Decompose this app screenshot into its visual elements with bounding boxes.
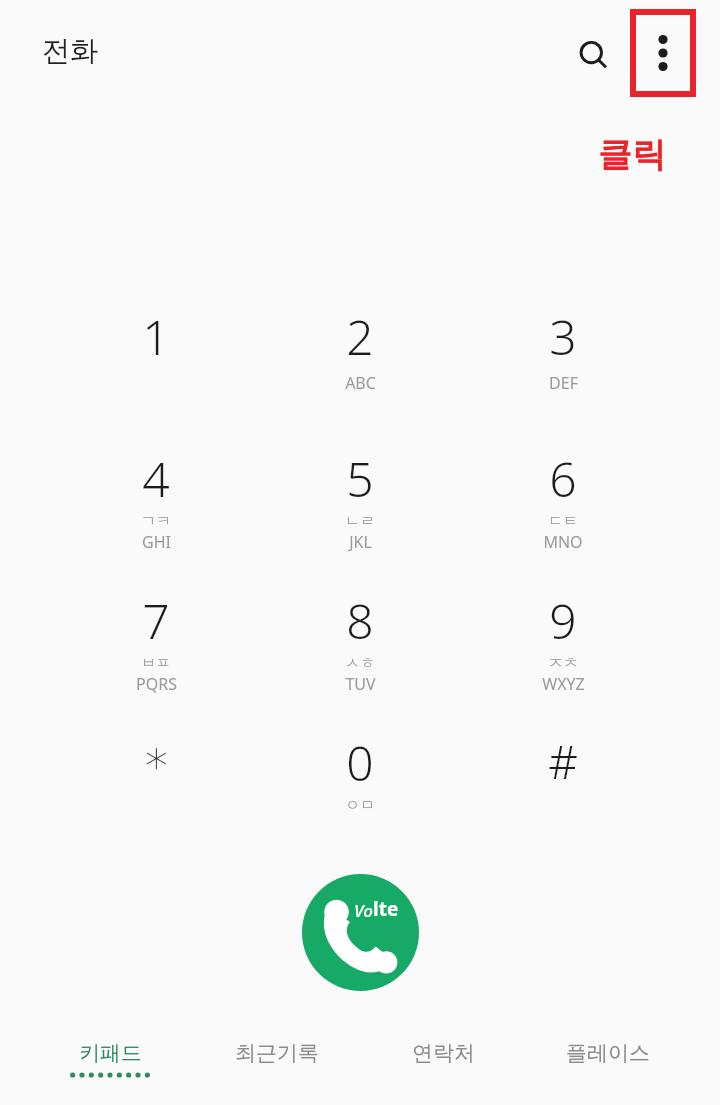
button[interactable]: 3 — [495, 304, 631, 436]
staticText: 플레이스 — [566, 1040, 650, 1066]
staticText: 8 — [346, 588, 374, 653]
button[interactable]: 플레이스 — [524, 1040, 692, 1104]
button[interactable]: 1 — [88, 304, 224, 436]
button[interactable]: 0 — [292, 730, 428, 862]
staticText: GHI — [142, 531, 171, 553]
button[interactable]: 최근기록 — [193, 1040, 361, 1104]
staticText: 6 — [549, 446, 577, 511]
staticText: WXYZ — [542, 673, 585, 695]
staticText: 2 — [346, 304, 374, 369]
button[interactable]: 9 — [495, 588, 631, 720]
staticText: 키패드 — [79, 1040, 142, 1066]
staticText: 최근기록 — [235, 1040, 319, 1066]
staticText: TUV — [345, 673, 376, 695]
staticText: ㅅㅎ — [345, 654, 375, 673]
staticText: 5 — [346, 446, 374, 511]
staticText: 전화 — [42, 33, 98, 68]
staticText: 클릭 — [598, 133, 666, 176]
staticText: ㅇㅁ — [345, 796, 375, 815]
staticText: # — [548, 730, 578, 793]
button[interactable]: More options — [630, 9, 696, 97]
staticText: 9 — [549, 588, 577, 653]
staticText: PQRS — [136, 673, 177, 695]
button[interactable]: Search — [566, 28, 622, 84]
staticText: ∗ — [142, 730, 171, 784]
button[interactable]: 키패드 — [26, 1040, 194, 1104]
staticText: ㅂㅍ — [141, 654, 171, 673]
staticText: ㄷㅌ — [548, 512, 578, 531]
staticText: ㄴㄹ — [345, 512, 375, 531]
button[interactable]: 연락처 — [359, 1040, 527, 1104]
staticText: 연락처 — [412, 1040, 475, 1066]
staticText: ㄱㅋ — [141, 512, 171, 531]
staticText: 0 — [346, 730, 374, 795]
button[interactable]: # — [495, 730, 631, 862]
staticText: MNO — [543, 531, 583, 553]
button[interactable]: 5 — [292, 446, 428, 578]
button[interactable]: 6 — [495, 446, 631, 578]
staticText: 4 — [142, 446, 170, 511]
button[interactable]: Call — [302, 874, 419, 991]
staticText: Vo — [354, 899, 373, 922]
button[interactable]: 7 — [88, 588, 224, 720]
button[interactable]: 전화 — [42, 33, 98, 68]
staticText: DEF — [549, 372, 578, 394]
button[interactable]: 8 — [292, 588, 428, 720]
staticText: 1 — [142, 304, 170, 369]
staticText: ABC — [345, 372, 376, 394]
staticText: 7 — [142, 588, 170, 653]
staticText: ㅈㅊ — [548, 654, 578, 673]
staticText: JKL — [349, 531, 372, 553]
staticText: 3 — [549, 304, 577, 369]
button[interactable]: 4 — [88, 446, 224, 578]
staticText: lte — [373, 896, 399, 922]
button[interactable]: 2 — [292, 304, 428, 436]
button[interactable]: ∗ — [88, 730, 224, 862]
